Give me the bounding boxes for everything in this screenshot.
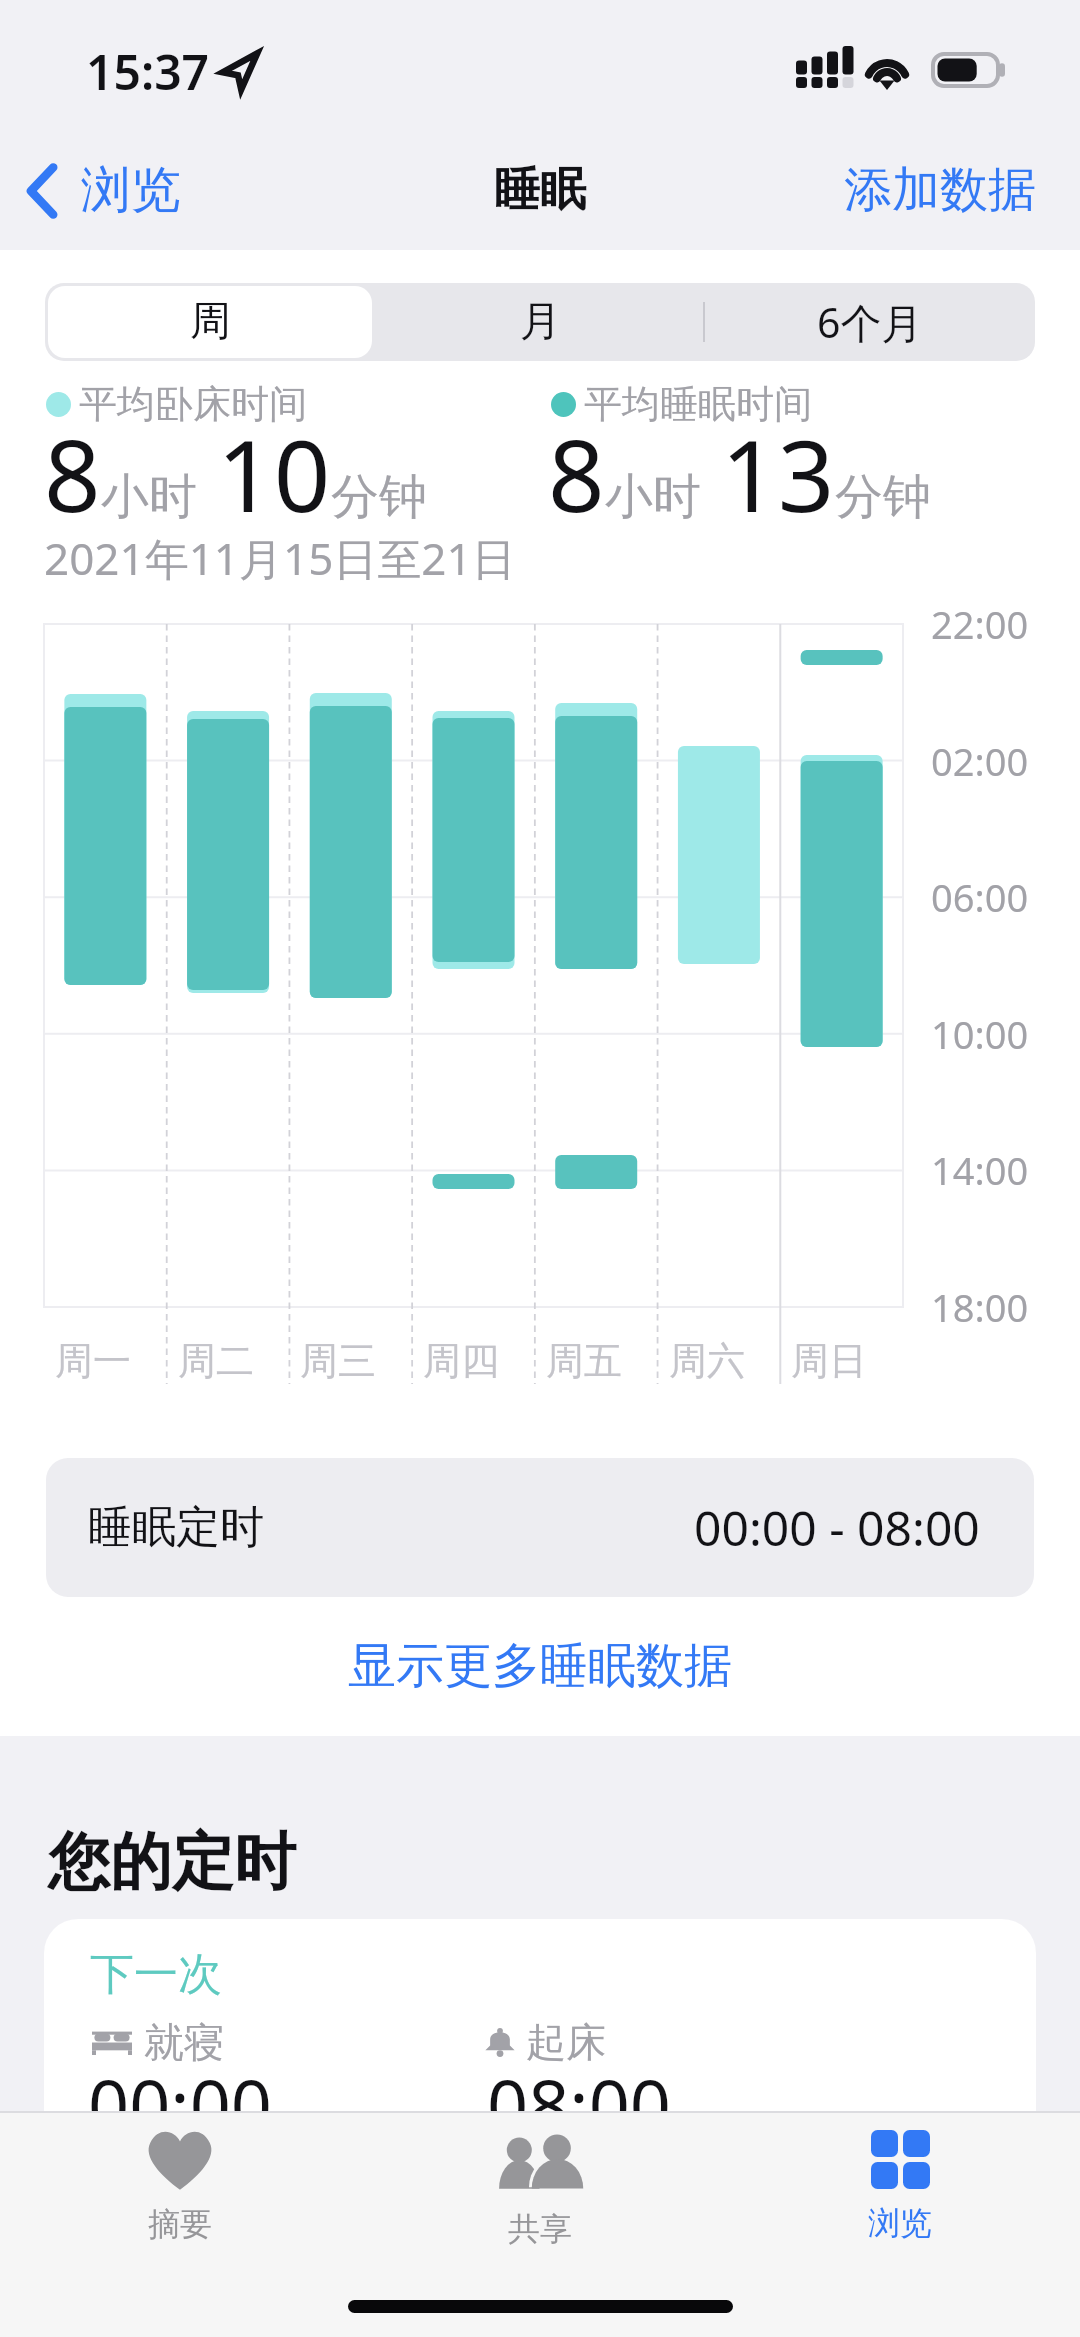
staticText: 06:00 (931, 871, 1029, 923)
button[interactable]: 周 (48, 286, 372, 358)
staticText: 8 (44, 406, 101, 541)
staticText: 摘要 (148, 2204, 212, 2244)
button[interactable]: 浏览 (23, 159, 181, 222)
staticText: 睡眠定时 (88, 1500, 264, 1555)
other: Battery (931, 52, 1007, 88)
staticText: 显示更多睡眠数据 (348, 1636, 732, 1696)
staticText: 周六 (669, 1337, 745, 1385)
staticText: 18:00 (931, 1281, 1029, 1333)
staticText: 8 (548, 406, 605, 541)
staticText: 6个月 (817, 294, 923, 350)
button[interactable]: 浏览 (720, 2111, 1080, 2281)
other: Location (220, 50, 260, 92)
staticText: 周日 (791, 1337, 867, 1385)
other: Cellular signal (796, 46, 854, 88)
staticText: 13 (721, 406, 835, 541)
staticText: 22:00 (931, 598, 1029, 650)
button[interactable]: 6个月 (705, 283, 1035, 361)
staticText: 08:00 (487, 2055, 672, 2153)
button[interactable]: 摘要 (0, 2111, 360, 2281)
staticText: 15:37 (86, 39, 210, 104)
staticText: 小时 (605, 467, 701, 527)
staticText: 小时 (101, 467, 197, 527)
staticText: 您的定时 (48, 1823, 296, 1901)
button[interactable]: 添加数据 (844, 160, 1036, 220)
staticText: 浏览 (81, 159, 181, 222)
staticText: 添加数据 (844, 160, 1036, 220)
button[interactable]: 月 (375, 283, 705, 361)
staticText: 周一 (55, 1337, 131, 1385)
staticText: 周二 (178, 1337, 254, 1385)
staticText: 浏览 (868, 2203, 932, 2243)
staticText: 分钟 (835, 467, 931, 527)
staticText: 周三 (300, 1337, 376, 1385)
staticText: 02:00 (931, 735, 1029, 787)
button[interactable]: 睡眠定时 (46, 1458, 1034, 1597)
staticText: 周 (190, 296, 231, 348)
staticText: 下一次 (90, 1947, 222, 2002)
staticText: 起床 (526, 2017, 606, 2067)
button[interactable]: 共享 (360, 2111, 720, 2281)
staticText: 00:00 (88, 2055, 273, 2153)
staticText: 月 (520, 296, 561, 348)
staticText: 平均卧床时间 (79, 380, 307, 428)
staticText: 周五 (546, 1337, 622, 1385)
staticText: 14:00 (931, 1144, 1029, 1196)
button[interactable]: 显示更多睡眠数据 (0, 1620, 1080, 1712)
staticText: 00:00 - 08:00 (694, 1495, 980, 1560)
staticText: 2021年11月15日至21日 (44, 528, 516, 588)
other: Wi-Fi (862, 50, 912, 90)
staticText: 就寝 (144, 2017, 224, 2067)
staticText: 10 (217, 406, 331, 541)
staticText: 分钟 (331, 467, 427, 527)
staticText: 平均睡眠时间 (584, 380, 812, 428)
button[interactable]: 下一次 (44, 1919, 1036, 2249)
staticText: 共享 (508, 2209, 572, 2249)
staticText: 周四 (423, 1337, 499, 1385)
staticText: 10:00 (931, 1008, 1029, 1060)
staticText: 睡眠 (494, 161, 586, 219)
